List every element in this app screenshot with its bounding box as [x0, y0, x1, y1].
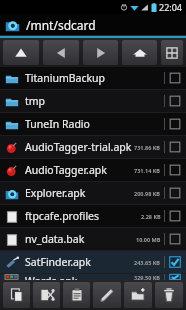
button[interactable]: AudioTagger-trial.apk	[0, 136, 186, 158]
button[interactable]: Not selected	[169, 210, 181, 222]
staticText: 22:04	[159, 1, 183, 13]
staticText: 10.00 MB	[136, 236, 161, 243]
button[interactable]: ftpcafe.profiles	[0, 205, 186, 227]
button[interactable]: Rename	[93, 282, 121, 308]
staticText: Words.apk	[25, 274, 134, 280]
button[interactable]: Not selected	[169, 187, 181, 199]
button[interactable]: TitaniumBackup	[0, 67, 186, 89]
button[interactable]: Not selected	[169, 141, 181, 153]
button[interactable]: AudioTagger.apk	[0, 159, 186, 181]
button[interactable]: TuneIn Radio	[0, 113, 186, 135]
button[interactable]: New folder	[124, 282, 152, 308]
button[interactable]: Delete	[155, 282, 183, 308]
staticText: TuneIn Radio	[25, 117, 161, 131]
staticText: AudioTagger.apk	[25, 163, 134, 177]
button[interactable]: Copy	[3, 282, 30, 308]
button[interactable]: Selected	[169, 256, 181, 268]
button[interactable]: SatFinder.apk	[0, 251, 186, 273]
staticText: AudioTagger-trial.apk	[25, 140, 134, 154]
button[interactable]: Explorer.apk	[0, 182, 186, 204]
staticText: 731.14 KB	[134, 167, 161, 174]
button[interactable]: tmp	[0, 90, 186, 112]
staticText: 329.50 KB	[134, 274, 161, 280]
staticText: 200.98 KB	[134, 190, 161, 197]
staticText: 731.86 KB	[134, 144, 161, 151]
button[interactable]: Words.apk	[0, 274, 186, 280]
staticText: ftpcafe.profiles	[25, 209, 141, 223]
staticText: 243.65 KB	[134, 259, 161, 266]
button[interactable]: Not selected	[169, 164, 181, 176]
button[interactable]: Grid view	[161, 40, 183, 65]
staticText: nv_data.bak	[25, 232, 136, 246]
button[interactable]: Paste	[63, 282, 90, 308]
staticText: tmp	[25, 94, 161, 108]
button[interactable]: Up	[3, 40, 39, 65]
button[interactable]: Not selected	[169, 95, 181, 107]
button[interactable]: Forward	[83, 40, 118, 65]
staticText: Explorer.apk	[25, 186, 134, 200]
staticText: 2.28 KB	[141, 213, 161, 220]
button[interactable]: Home	[122, 40, 157, 65]
staticText: /mnt/sdcard	[26, 17, 96, 33]
button[interactable]: Not selected	[169, 233, 181, 245]
button[interactable]: Not selected	[169, 72, 181, 84]
staticText: SatFinder.apk	[25, 255, 134, 269]
button[interactable]: Back	[43, 40, 79, 65]
staticText: TitaniumBackup	[25, 71, 161, 85]
button[interactable]: nv_data.bak	[0, 228, 186, 250]
button[interactable]: Not selected	[169, 118, 181, 130]
button[interactable]: Cut	[33, 282, 60, 308]
button[interactable]: Selected	[169, 274, 181, 280]
